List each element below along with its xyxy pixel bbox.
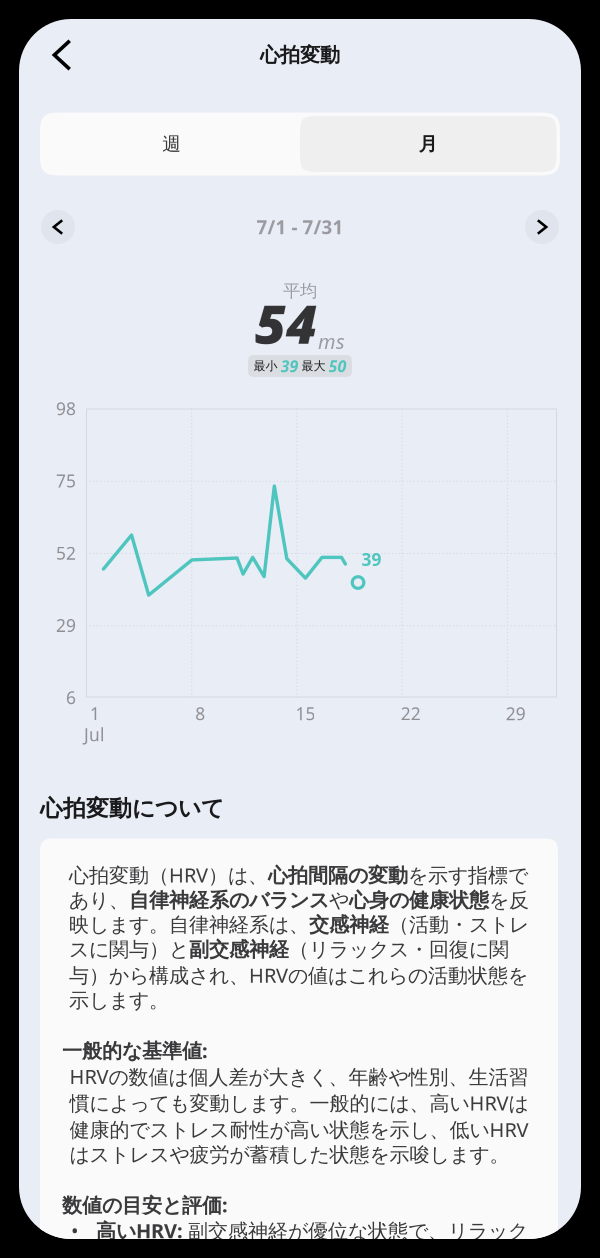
staticText: ms bbox=[318, 328, 345, 354]
staticText: 8 bbox=[195, 702, 205, 725]
staticText: 数値の目安と評価: bbox=[62, 1191, 228, 1218]
staticText: 39 bbox=[361, 548, 381, 571]
button[interactable]: 前の期間 bbox=[41, 210, 75, 244]
staticText: 心拍変動 bbox=[260, 43, 340, 67]
staticText: 週 bbox=[162, 132, 181, 155]
staticText: 54 bbox=[255, 288, 317, 358]
button[interactable]: 戻る bbox=[40, 33, 84, 77]
staticText: 22 bbox=[401, 702, 421, 725]
staticText: HRVの数値は個人差が大きく、年齢や性別、生活習慣によっても変動します。一般的に… bbox=[69, 1063, 528, 1167]
staticText: 29 bbox=[506, 702, 526, 725]
button[interactable]: 月 bbox=[300, 116, 556, 172]
button[interactable]: 週 bbox=[43, 116, 300, 172]
staticText: 98 bbox=[56, 397, 76, 420]
button[interactable]: 次の期間 bbox=[525, 210, 559, 244]
staticText: 平均 bbox=[283, 280, 317, 302]
staticText: 29 bbox=[56, 614, 76, 637]
staticText: 高いHRV: 副交感神経が優位な状態で、リラックスしていることを示します。 bbox=[96, 1217, 528, 1258]
staticText: 39 bbox=[280, 355, 298, 377]
staticText: • bbox=[71, 1217, 79, 1244]
staticText: 50 bbox=[328, 355, 346, 377]
staticText: 1 bbox=[90, 702, 100, 725]
staticText: 52 bbox=[56, 541, 76, 564]
staticText: 月 bbox=[419, 132, 438, 155]
staticText: 最小 bbox=[253, 359, 277, 373]
staticText: Jul bbox=[84, 723, 104, 746]
staticText: 75 bbox=[56, 469, 76, 492]
staticText: 心拍変動について bbox=[40, 795, 224, 822]
staticText: 一般的な基準値: bbox=[62, 1037, 208, 1064]
staticText: 最大 bbox=[301, 359, 325, 373]
staticText: 15 bbox=[295, 702, 315, 725]
staticText: 7/1 - 7/31 bbox=[256, 215, 343, 239]
staticText: 6 bbox=[66, 686, 76, 709]
staticText: 心拍変動（HRV）は、心拍間隔の変動を示す指標であり、自律神経系のバランスや心身… bbox=[69, 861, 529, 1013]
